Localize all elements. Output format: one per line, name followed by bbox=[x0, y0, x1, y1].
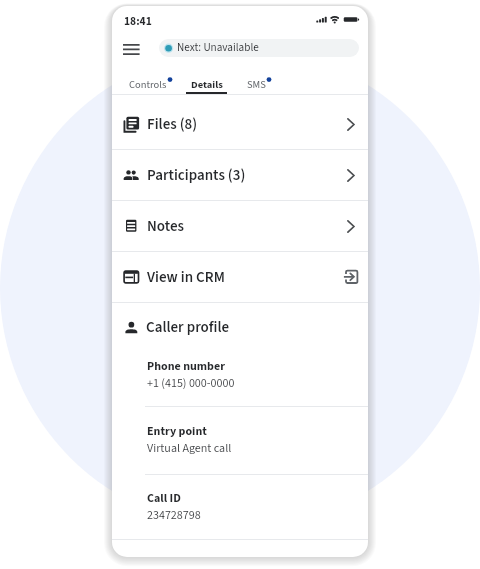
staticText: Entry point bbox=[147, 423, 207, 440]
staticText: Details bbox=[191, 77, 223, 92]
staticText: Files (8) bbox=[147, 114, 198, 135]
staticText: View in CRM bbox=[147, 267, 225, 288]
staticText: 234728798 bbox=[147, 507, 201, 524]
staticText: Caller profile bbox=[146, 317, 230, 338]
staticText: Virtual Agent call bbox=[147, 440, 232, 457]
button[interactable]: Notes bbox=[112, 201, 368, 251]
staticText: SMS bbox=[247, 77, 266, 92]
button[interactable]: SMS bbox=[230, 66, 282, 94]
button[interactable]: Next: Unavailable bbox=[159, 39, 359, 57]
button[interactable]: Details bbox=[183, 66, 230, 94]
staticText: Call ID bbox=[147, 490, 181, 507]
staticText: +1 (415) 000-0000 bbox=[147, 375, 235, 392]
staticText: Participants (3) bbox=[147, 165, 246, 186]
button[interactable]: Participants (3) bbox=[112, 150, 368, 200]
button[interactable]: Controls bbox=[112, 66, 183, 94]
staticText: Phone number bbox=[147, 358, 225, 375]
staticText: Notes bbox=[147, 216, 185, 237]
staticText: Controls bbox=[129, 77, 167, 92]
button[interactable]: View in CRM bbox=[112, 252, 368, 302]
staticText: 18:41 bbox=[124, 13, 152, 29]
other: Open in CRM bbox=[343, 269, 359, 285]
button[interactable]: Menu bbox=[115, 34, 148, 64]
staticText: Next: Unavailable bbox=[177, 40, 259, 56]
button[interactable]: Files (8) bbox=[112, 99, 368, 149]
